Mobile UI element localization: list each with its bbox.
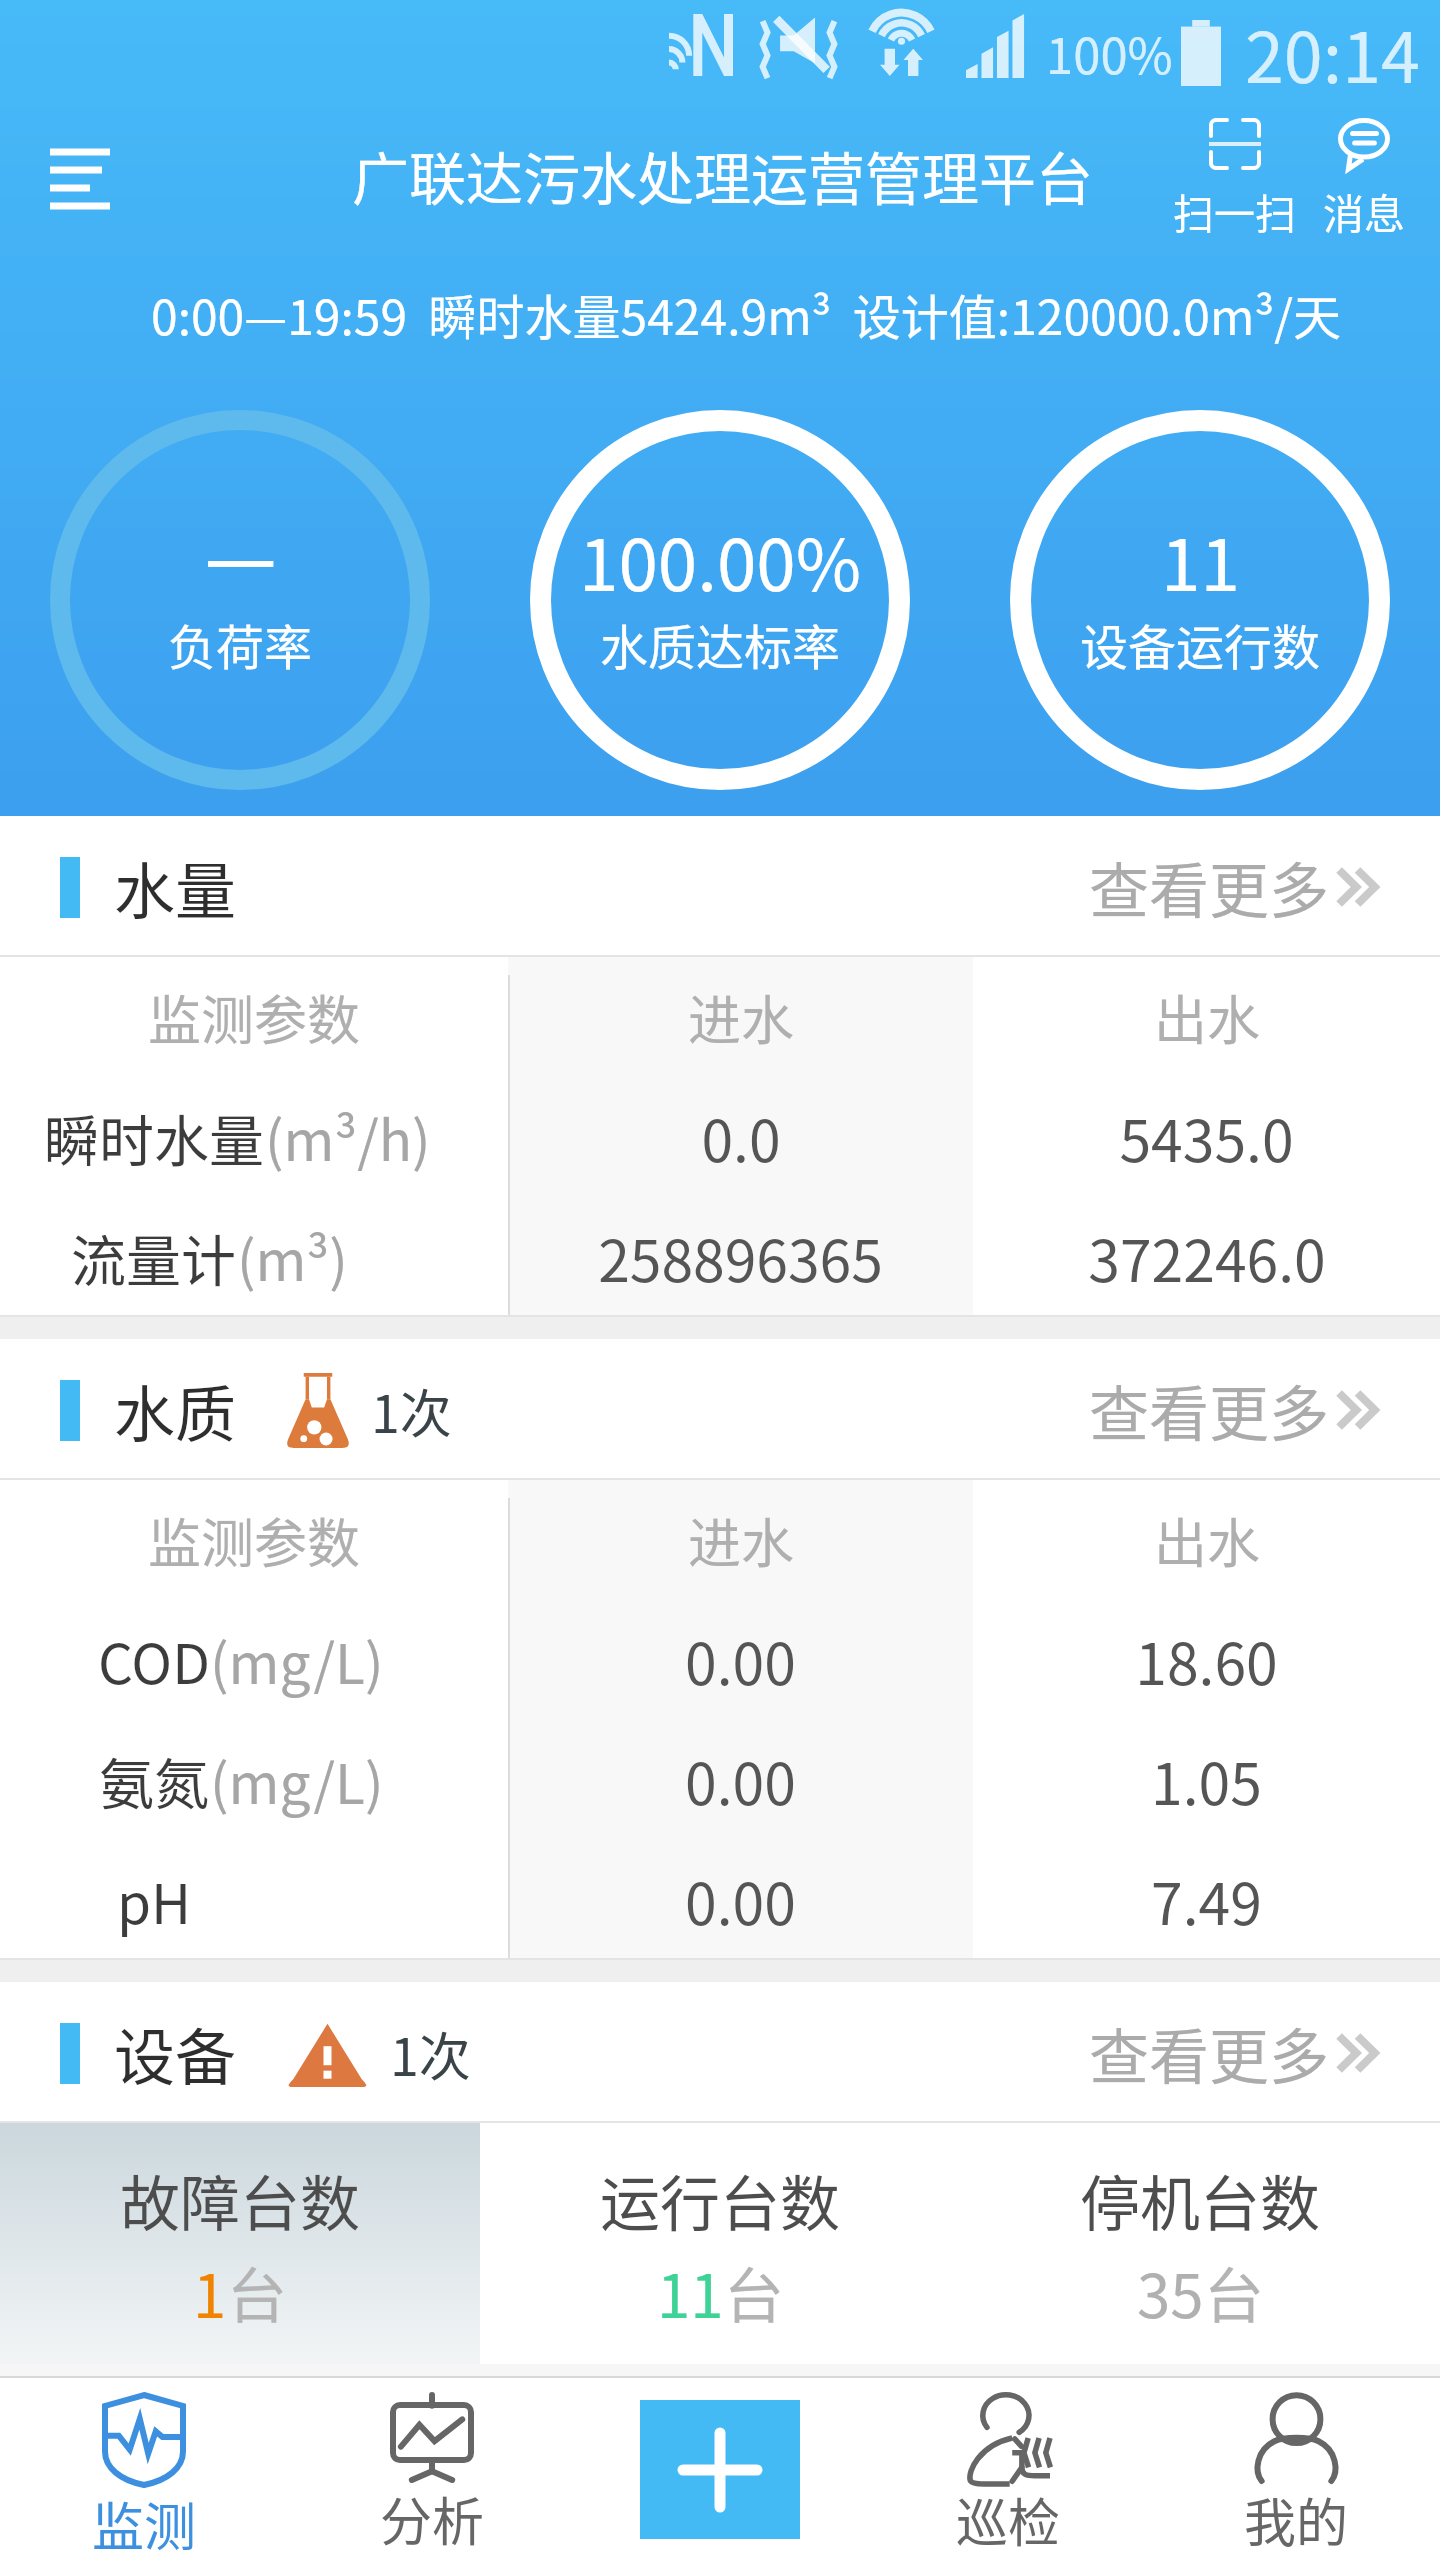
staticText: 水质达标率 <box>600 609 841 679</box>
staticText: 扫一扫 <box>1173 181 1296 240</box>
staticText: 1次 <box>390 2016 471 2091</box>
staticText: 查看更多 <box>1089 843 1329 930</box>
staticText: 372246.0 <box>1088 1216 1326 1299</box>
staticText: 广联达污水处理运营管理平台 <box>352 134 1093 217</box>
button[interactable]: Menu <box>20 119 140 239</box>
button[interactable]: 水质 <box>60 1366 452 1454</box>
staticText: 台 <box>724 2248 784 2335</box>
staticText: 监测参数 <box>148 1502 360 1579</box>
staticText: 0.00 <box>685 1739 796 1822</box>
button[interactable]: 分析 <box>288 2378 576 2560</box>
staticText: 水量 <box>114 843 237 931</box>
staticText: 0:00—19:59 瞬时水量5424.9m³ 设计值:120000.0m³/天 <box>151 279 1341 349</box>
staticText: 查看更多 <box>1089 2009 1329 2096</box>
staticText: 监测参数 <box>148 979 360 1056</box>
staticText: 18.60 <box>1135 1619 1278 1702</box>
staticText: 11 <box>1161 509 1240 612</box>
staticText: 258896365 <box>598 1216 883 1299</box>
staticText: 0.00 <box>685 1859 796 1942</box>
staticText: (m³/h) <box>265 1097 431 1177</box>
staticText: 瞬时水量 <box>44 1097 265 1177</box>
staticText: (mg/L) <box>210 1620 384 1700</box>
button[interactable]: 查看更多 <box>1089 833 1376 940</box>
staticText: 停机台数 <box>1080 2156 1320 2243</box>
staticText: 11 <box>657 2248 724 2335</box>
button[interactable]: 水量 <box>60 843 237 931</box>
button[interactable]: 扫一扫 <box>1166 112 1303 246</box>
staticText: 故障台数 <box>120 2156 360 2243</box>
button[interactable]: 设备 <box>60 2009 471 2097</box>
staticText: 水质 <box>114 1366 237 1454</box>
staticText: 1 <box>193 2248 227 2335</box>
staticText: 设备 <box>114 2009 237 2097</box>
staticText: 出水 <box>1154 1502 1260 1579</box>
staticText: 进水 <box>688 1502 794 1579</box>
staticText: 7.49 <box>1151 1859 1262 1942</box>
button[interactable]: 查看更多 <box>1089 1356 1376 1463</box>
button[interactable]: 停机台数 <box>960 2123 1440 2364</box>
staticText: 我的 <box>1244 2482 1349 2557</box>
staticText: 氨氮 <box>99 1740 210 1820</box>
button[interactable]: 巡检 <box>864 2378 1152 2560</box>
staticText: 1.05 <box>1151 1739 1262 1822</box>
staticText: 100.00% <box>579 509 862 612</box>
staticText: 台 <box>1204 2248 1264 2335</box>
staticText: (mg/L) <box>210 1740 384 1820</box>
staticText: 100% <box>1046 17 1173 88</box>
staticText: 进水 <box>688 979 794 1056</box>
staticText: 1次 <box>371 1373 452 1448</box>
staticText: 设备运行数 <box>1080 609 1321 679</box>
staticText: 负荷率 <box>168 609 313 679</box>
button[interactable]: 运行台数 <box>480 2123 960 2364</box>
button[interactable]: 监测 <box>0 2378 288 2560</box>
button[interactable]: 一 <box>0 410 480 790</box>
staticText: 出水 <box>1154 979 1260 1056</box>
button[interactable]: 消息 <box>1316 112 1412 246</box>
button[interactable]: 我的 <box>1152 2378 1440 2560</box>
staticText: 巡检 <box>956 2482 1061 2557</box>
staticText: 流量计 <box>71 1217 237 1297</box>
staticText: 一 <box>205 509 277 612</box>
staticText: 运行台数 <box>600 2156 840 2243</box>
button[interactable]: 查看更多 <box>1089 1999 1376 2106</box>
button[interactable]: 100.00% <box>480 410 960 790</box>
staticText: 分析 <box>380 2481 485 2556</box>
button[interactable]: 11 <box>960 410 1440 790</box>
staticText: pH <box>117 1860 192 1940</box>
staticText: (m³) <box>237 1217 348 1297</box>
button[interactable]: Add <box>640 2400 800 2539</box>
staticText: 0.0 <box>701 1096 781 1179</box>
staticText: 5435.0 <box>1119 1096 1294 1179</box>
staticText: 监测 <box>92 2486 197 2558</box>
staticText: 台 <box>227 2248 287 2335</box>
staticText: COD <box>98 1620 210 1700</box>
staticText: 20:14 <box>1245 2 1420 103</box>
button[interactable]: 故障台数 <box>0 2123 480 2364</box>
staticText: 35 <box>1137 2248 1204 2335</box>
staticText: 0.00 <box>685 1619 796 1702</box>
staticText: 查看更多 <box>1089 1366 1329 1453</box>
staticText: 消息 <box>1323 181 1405 240</box>
